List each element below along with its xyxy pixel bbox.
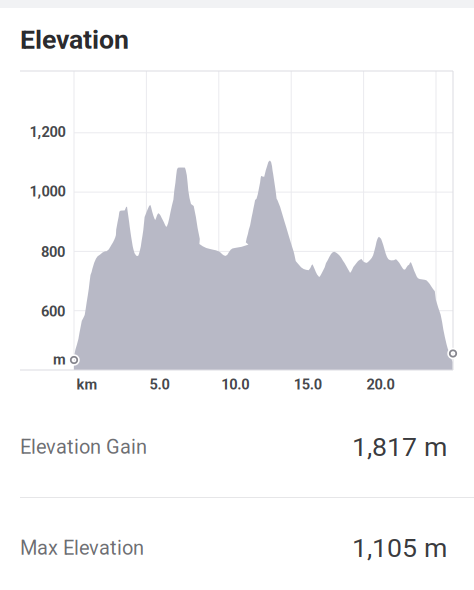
staticText: Elevation Gain (20, 435, 147, 459)
staticText: 1,817 m (352, 431, 447, 463)
staticText: 1,105 m (352, 532, 447, 564)
staticText: 1,200 (29, 123, 65, 141)
staticText: 10.0 (221, 376, 249, 393)
staticText: m (53, 351, 66, 368)
staticText: Elevation (20, 24, 129, 55)
button[interactable]: Max Elevation (0, 498, 474, 590)
staticText: 600 (41, 303, 65, 320)
staticText: 1,000 (29, 183, 65, 200)
button[interactable]: Elevation Gain (0, 397, 474, 497)
staticText: 20.0 (367, 376, 395, 393)
staticText: Max Elevation (20, 536, 144, 560)
staticText: 5.0 (149, 376, 169, 393)
staticText: 800 (41, 243, 65, 261)
staticText: 15.0 (294, 376, 322, 393)
staticText: km (76, 376, 97, 393)
